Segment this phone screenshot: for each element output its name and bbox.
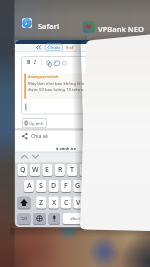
button[interactable]: C	[61, 197, 71, 209]
staticText: Z	[39, 198, 44, 208]
button[interactable]: W	[30, 164, 40, 176]
staticText: D	[51, 181, 57, 191]
staticText: X	[52, 198, 57, 208]
staticText: W	[32, 165, 39, 175]
button[interactable]: A	[24, 180, 34, 192]
button[interactable]	[20, 131, 80, 143]
button[interactable]: R	[55, 164, 65, 176]
button[interactable]	[83, 21, 95, 33]
staticText: S	[39, 181, 43, 191]
button[interactable]: dấu cách	[63, 213, 118, 224]
button[interactable]: E	[42, 164, 52, 176]
staticText: T	[70, 165, 74, 175]
staticText: Chia sẻ	[31, 133, 48, 140]
staticText: E	[45, 165, 49, 175]
button[interactable]	[86, 40, 150, 229]
staticText: Máy làm như bao không lẽ b	[28, 81, 85, 87]
button[interactable]: 123	[18, 213, 31, 224]
button[interactable]	[22, 18, 32, 28]
button[interactable]: S	[36, 180, 46, 192]
staticText: Safari	[38, 21, 60, 31]
button[interactable]: T	[67, 164, 77, 176]
staticText: R	[58, 165, 63, 175]
staticText: B	[27, 59, 31, 66]
button[interactable]: D	[49, 180, 59, 192]
staticText: ⋮	[39, 59, 44, 65]
staticText: Q	[20, 165, 26, 175]
button[interactable]: X	[49, 197, 59, 209]
staticText: doanguyenminh	[28, 74, 59, 79]
button[interactable]: Z	[36, 197, 46, 209]
staticText: F	[64, 181, 68, 191]
staticText: G	[75, 181, 81, 191]
staticText: 9 of	[66, 45, 74, 50]
staticText: được 50 bạo lương 10 trẻo v	[28, 87, 84, 93]
button[interactable]: F	[61, 180, 71, 192]
button[interactable]: G	[73, 180, 83, 192]
staticText: 123	[21, 216, 28, 221]
staticText: VPBank NEO	[98, 24, 144, 34]
staticText: A	[27, 181, 32, 191]
button[interactable]: V	[73, 197, 83, 209]
button[interactable]: Q	[18, 164, 28, 176]
staticText: dấu cách	[70, 216, 88, 222]
staticText: Trước	[50, 45, 61, 50]
button[interactable]: Y	[80, 164, 90, 176]
staticText: C	[64, 198, 69, 208]
staticText: Úp ảnh	[29, 121, 44, 127]
button[interactable]: Trước	[15, 40, 140, 227]
staticText: V	[76, 198, 81, 208]
staticText: I	[34, 59, 36, 66]
staticText: ả xảnh tre	[56, 146, 77, 151]
